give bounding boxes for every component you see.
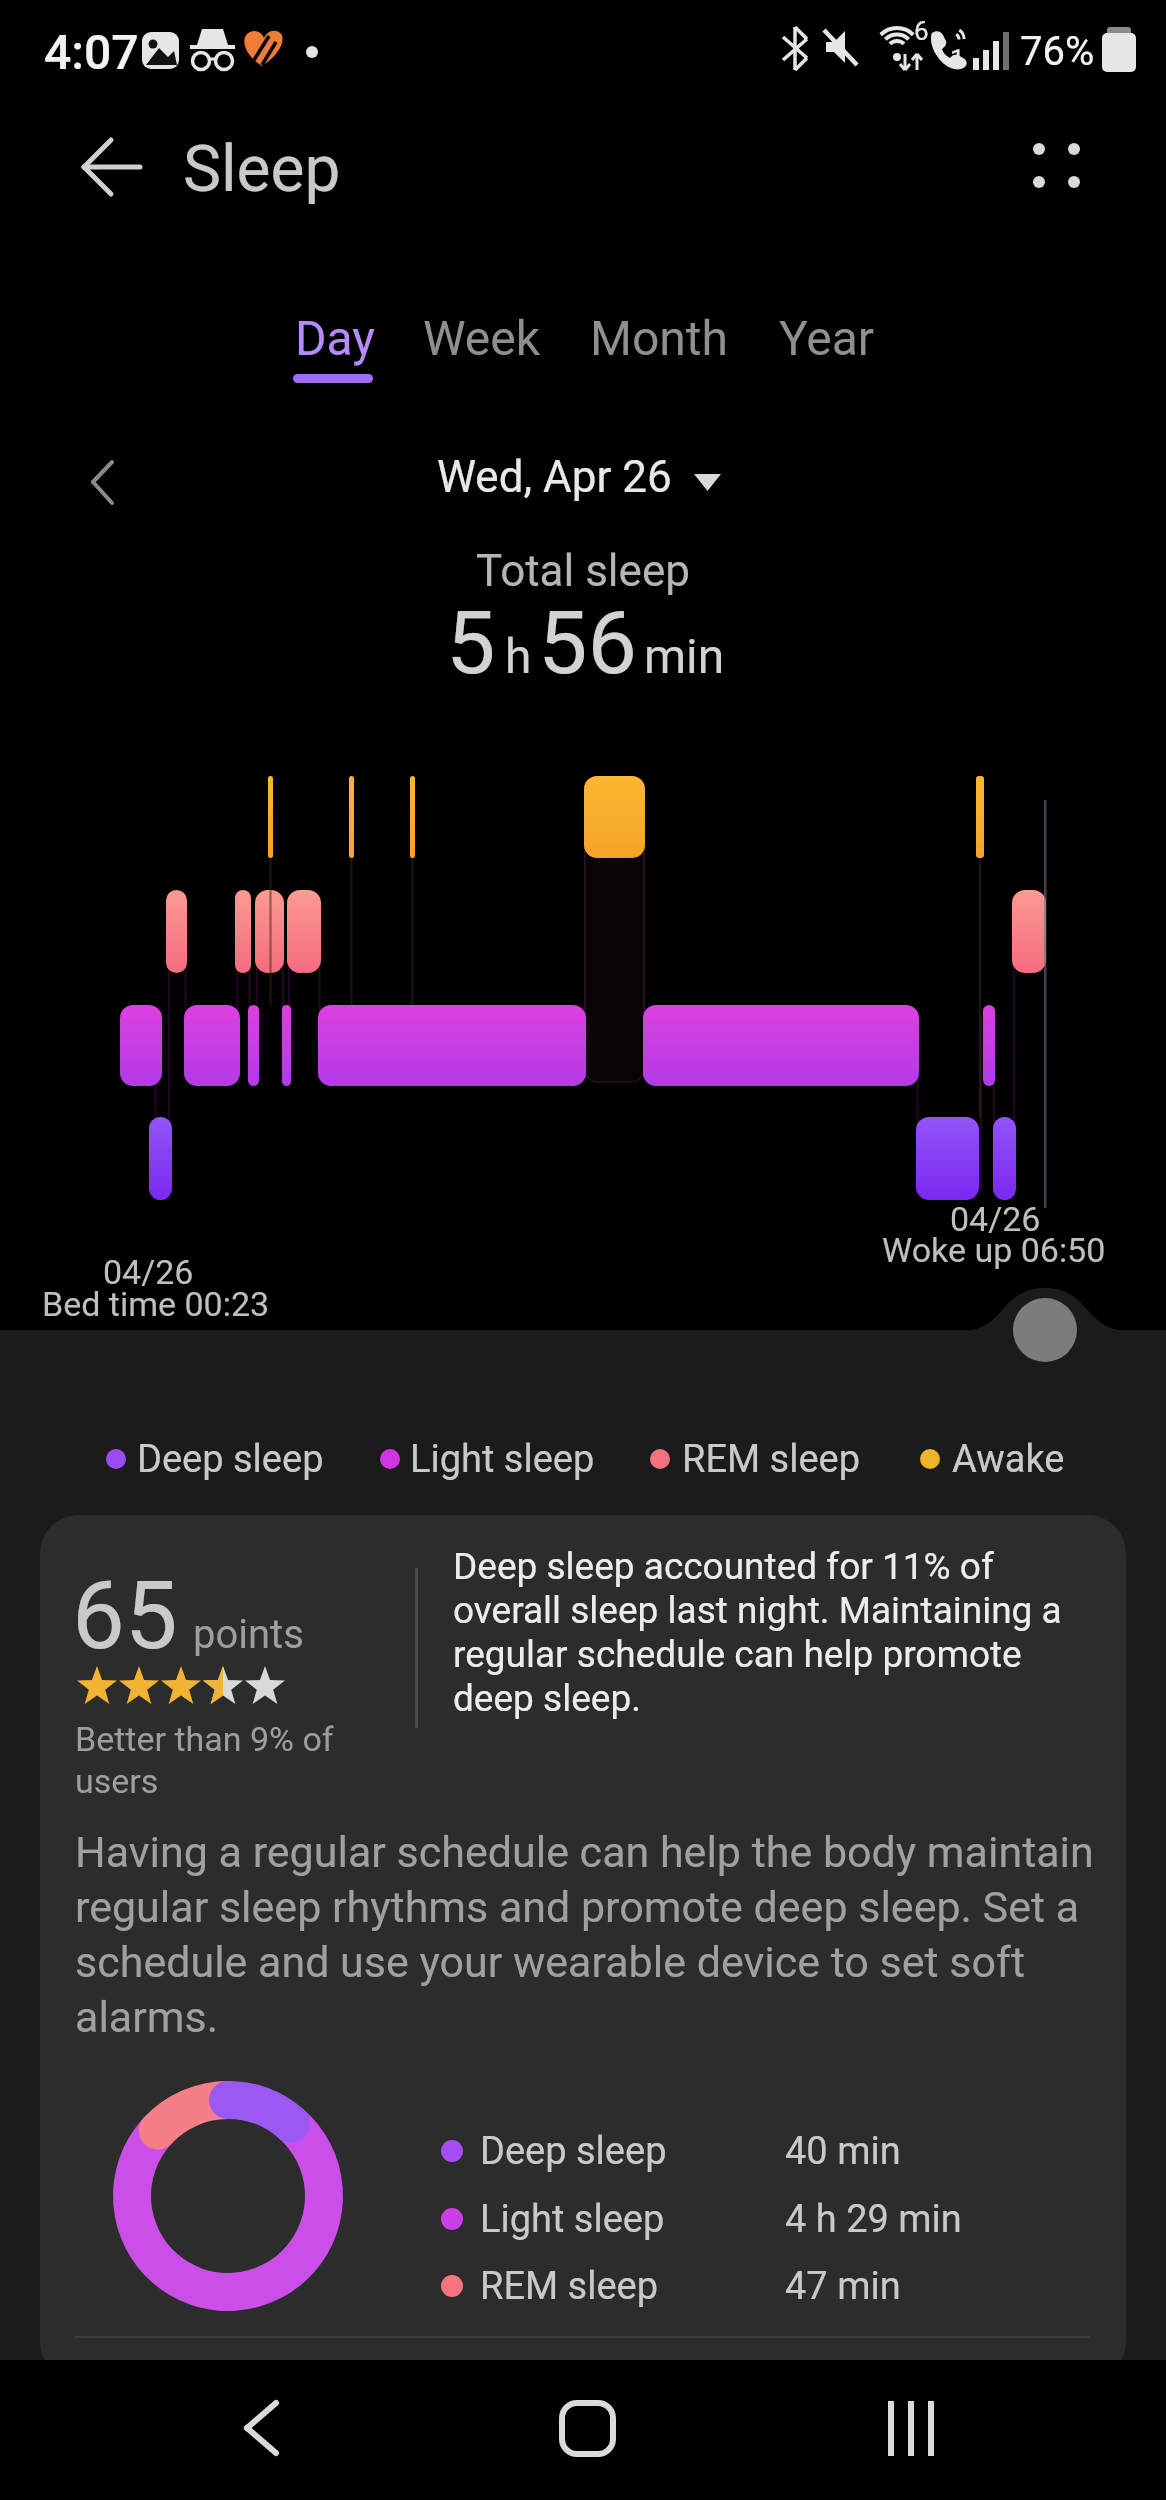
staticText: users: [75, 1761, 159, 1801]
staticText: Light sleep: [480, 2197, 665, 2242]
staticText: 56: [538, 591, 637, 694]
button[interactable]: Day: [295, 310, 375, 366]
staticText: Sleep: [183, 132, 341, 207]
staticText: 65: [72, 1561, 178, 1671]
button[interactable]: [200, 2380, 320, 2480]
staticText: 76%: [1020, 28, 1095, 75]
staticText: Awake: [952, 1437, 1065, 1482]
staticText: 04/26: [950, 1199, 1041, 1239]
button[interactable]: Week: [423, 310, 541, 366]
staticText: min: [644, 628, 725, 684]
staticText: REM sleep: [682, 1437, 861, 1482]
staticText: Total sleep: [476, 545, 690, 597]
button[interactable]: Wed, Apr 26: [437, 451, 672, 503]
button[interactable]: Month: [590, 310, 728, 366]
staticText: 40 min: [785, 2129, 901, 2174]
staticText: Having a regular schedule can help the b…: [75, 1827, 1094, 2042]
staticText: 47 min: [785, 2264, 901, 2309]
staticText: Woke up 06:50: [882, 1230, 1106, 1270]
staticText: 6: [914, 16, 929, 46]
staticText: 04/26: [103, 1252, 194, 1292]
staticText: Deep sleep: [480, 2129, 667, 2174]
staticText: 4:07: [44, 24, 139, 80]
staticText: Bed time 00:23: [42, 1284, 270, 1324]
staticText: points: [193, 1611, 304, 1658]
staticText: 4 h 29 min: [785, 2197, 962, 2242]
button[interactable]: [985, 1295, 1105, 1367]
staticText: Deep sleep: [137, 1437, 324, 1482]
button[interactable]: Year: [779, 310, 875, 366]
staticText: Deep sleep accounted for 11% of overall …: [453, 1545, 1062, 1720]
button[interactable]: [1010, 120, 1110, 215]
button[interactable]: [530, 2380, 650, 2480]
staticText: REM sleep: [480, 2264, 659, 2309]
button[interactable]: [70, 440, 140, 525]
staticText: 5: [446, 591, 496, 694]
staticText: 1: [950, 44, 965, 74]
button[interactable]: [60, 125, 160, 215]
staticText: Light sleep: [410, 1437, 595, 1482]
staticText: h: [505, 628, 532, 684]
staticText: Better than 9% of: [75, 1719, 334, 1759]
button[interactable]: [855, 2380, 965, 2480]
